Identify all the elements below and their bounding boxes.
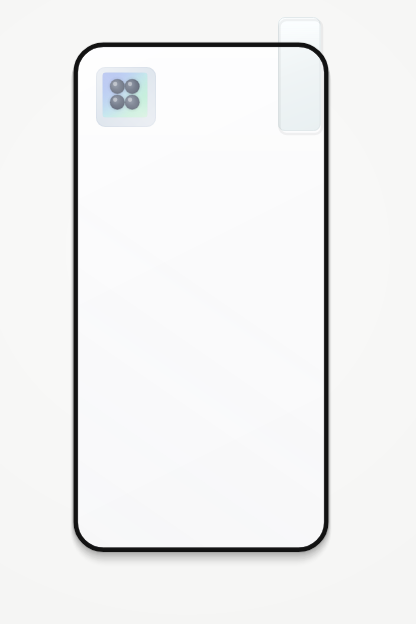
button[interactable]: Tempered glass screen protector product …	[0, 0, 416, 624]
